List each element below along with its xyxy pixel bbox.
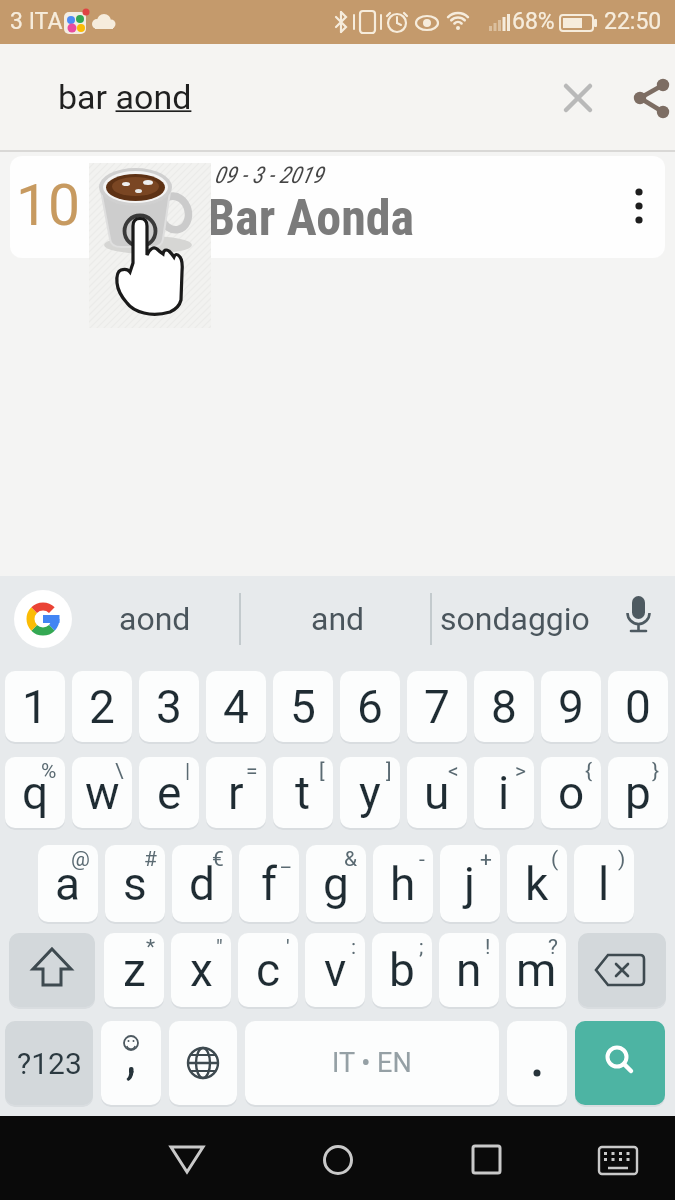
button[interactable]: t (273, 757, 333, 828)
button[interactable] (507, 1021, 567, 1105)
staticText: } (652, 759, 660, 784)
staticText: % (41, 759, 57, 784)
button[interactable]: IT • EN (245, 1021, 499, 1105)
staticText: ' (286, 935, 290, 960)
staticText: : (351, 935, 357, 960)
staticText: 09 - 3 - 2019 (214, 162, 324, 189)
button[interactable]: b (372, 933, 432, 1007)
button[interactable] (169, 1021, 237, 1105)
button[interactable] (9, 933, 95, 1007)
staticText: s (123, 857, 147, 911)
button[interactable]: f (239, 845, 299, 922)
staticText: " (216, 935, 223, 960)
staticText: _ (281, 847, 291, 872)
staticText: * (146, 935, 156, 960)
button[interactable] (575, 1021, 665, 1105)
staticText: r (228, 766, 244, 820)
button[interactable] (457, 1130, 517, 1186)
button[interactable]: g (306, 845, 366, 922)
button[interactable]: u (407, 757, 467, 828)
button[interactable]: n (439, 933, 499, 1007)
button[interactable]: w (72, 757, 132, 828)
button[interactable]: d (172, 845, 232, 922)
button[interactable] (616, 592, 660, 646)
button[interactable]: and (255, 590, 420, 648)
button[interactable]: z (104, 933, 164, 1007)
button[interactable]: a (38, 845, 98, 922)
staticText: a (55, 857, 81, 911)
staticText: ? (548, 935, 558, 960)
button[interactable]: j (440, 845, 500, 922)
staticText: 0 (625, 680, 651, 734)
button[interactable] (308, 1130, 368, 1186)
button[interactable]: q (5, 757, 65, 828)
staticText: [ (319, 759, 325, 784)
button[interactable] (157, 1130, 217, 1186)
button[interactable]: r (206, 757, 266, 828)
button[interactable] (588, 1130, 648, 1186)
staticText: l (598, 857, 610, 911)
staticText: 4 (223, 680, 249, 734)
staticText: - (419, 847, 425, 872)
button[interactable]: 4 (206, 671, 266, 742)
staticText: { (585, 759, 593, 784)
button[interactable]: 0 (608, 671, 668, 742)
staticText: z (123, 943, 146, 997)
button[interactable]: ?123 (5, 1021, 93, 1105)
button[interactable]: x (171, 933, 231, 1007)
button[interactable]: i (474, 757, 534, 828)
button[interactable] (101, 1021, 161, 1105)
button[interactable] (578, 933, 666, 1007)
button[interactable]: p (608, 757, 668, 828)
button[interactable]: 1 (5, 671, 65, 742)
button[interactable]: e (139, 757, 199, 828)
button[interactable]: l (574, 845, 634, 922)
staticText: f (261, 857, 277, 911)
staticText: ; (419, 935, 424, 960)
staticText: d (189, 857, 215, 911)
staticText: c (256, 943, 281, 997)
staticText: 8 (491, 680, 517, 734)
button[interactable] (630, 76, 675, 120)
staticText: 22:50 (604, 8, 662, 35)
staticText: 9 (558, 680, 584, 734)
button[interactable] (14, 590, 72, 648)
staticText: x (190, 943, 213, 997)
button[interactable]: c (238, 933, 298, 1007)
staticText: IT • EN (332, 1047, 412, 1079)
button[interactable] (556, 76, 600, 120)
staticText: > (515, 759, 526, 784)
button[interactable]: 7 (407, 671, 467, 742)
staticText: 7 (424, 680, 450, 734)
button[interactable]: 9 (541, 671, 601, 742)
button[interactable]: 3 (139, 671, 199, 742)
button[interactable]: 10 (10, 156, 665, 258)
staticText: e (157, 766, 182, 820)
button[interactable]: sondaggio (440, 590, 590, 648)
staticText: v (324, 943, 347, 997)
button[interactable]: aond (80, 590, 230, 648)
staticText: p (625, 766, 651, 820)
button[interactable]: v (305, 933, 365, 1007)
button[interactable]: s (105, 845, 165, 922)
staticText: n (456, 943, 482, 997)
button[interactable]: 6 (340, 671, 400, 742)
button[interactable]: h (373, 845, 433, 922)
staticText: o (558, 766, 585, 820)
staticText: aond (119, 600, 191, 638)
staticText: # (144, 847, 157, 872)
button[interactable]: 8 (474, 671, 534, 742)
staticText: 3 ITA (10, 8, 63, 35)
staticText: y (359, 766, 381, 820)
button[interactable]: k (507, 845, 567, 922)
staticText: w (85, 766, 120, 820)
button[interactable]: 5 (273, 671, 333, 742)
staticText: b (389, 943, 415, 997)
button[interactable]: y (340, 757, 400, 828)
staticText: bar aond (58, 77, 192, 117)
button[interactable] (617, 183, 661, 231)
staticText: t (295, 766, 311, 820)
button[interactable]: m (506, 933, 566, 1007)
button[interactable]: o (541, 757, 601, 828)
button[interactable]: 2 (72, 671, 132, 742)
